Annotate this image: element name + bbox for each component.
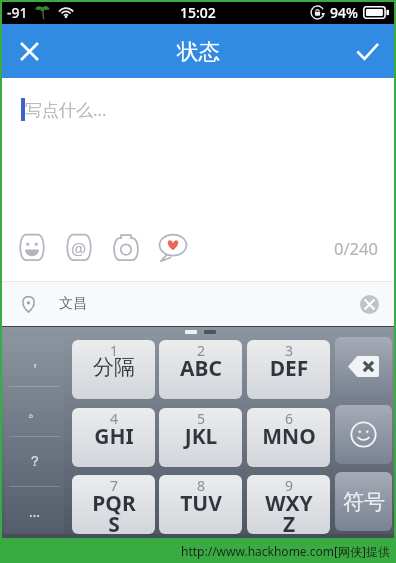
staticText: 6 xyxy=(285,409,294,428)
staticText: ？ xyxy=(28,453,42,471)
staticText: -91 xyxy=(7,3,28,22)
button[interactable]: 。 xyxy=(5,387,64,437)
staticText: JKL xyxy=(166,422,236,451)
button[interactable]: 3 xyxy=(247,340,330,399)
staticText: 写点什么... xyxy=(25,98,107,121)
button[interactable]: 文昌 xyxy=(0,282,396,326)
button[interactable]: 6 xyxy=(247,408,330,467)
button[interactable]: 4 xyxy=(72,408,155,467)
staticText: 3 xyxy=(285,341,294,360)
staticText: 8 xyxy=(197,476,206,495)
staticText: 。 xyxy=(28,403,42,421)
staticText: DEF xyxy=(254,354,324,383)
staticText: 15:02 xyxy=(180,3,216,22)
button[interactable]: ， xyxy=(5,337,64,387)
staticText: 1 xyxy=(110,341,119,360)
staticText: http://www.hackhome.com[网侠]提供 xyxy=(181,543,390,559)
staticText: PQRS xyxy=(89,489,139,533)
staticText: WXYZ xyxy=(264,489,314,533)
staticText: ， xyxy=(28,353,42,371)
staticText: 0/240 xyxy=(334,237,378,259)
button[interactable]: Symbols xyxy=(335,472,392,531)
button[interactable]: 5 xyxy=(159,408,242,467)
staticText: TUV xyxy=(166,489,236,518)
staticText: GHI xyxy=(79,422,149,451)
staticText: … xyxy=(29,502,41,521)
button[interactable]: Backspace xyxy=(335,337,392,396)
button[interactable]: Done xyxy=(338,24,396,78)
staticText: 5 xyxy=(197,409,206,428)
button[interactable]: 8 xyxy=(159,475,242,534)
button[interactable]: Clear location xyxy=(360,295,379,314)
staticText: 分隔 xyxy=(79,354,149,380)
staticText: 状态 xyxy=(177,38,220,65)
staticText: 4 xyxy=(110,409,119,428)
staticText: 7 xyxy=(110,476,119,495)
staticText: 9 xyxy=(285,476,294,495)
button[interactable]: Camera xyxy=(110,232,142,264)
staticText: @ xyxy=(71,237,87,260)
button[interactable]: Close xyxy=(0,24,58,78)
button[interactable]: 7 xyxy=(72,475,155,534)
button[interactable]: 9 xyxy=(247,475,330,534)
button[interactable]: Mention xyxy=(63,232,95,264)
button[interactable]: Emoji xyxy=(335,405,392,464)
button[interactable]: Sticker xyxy=(157,232,189,264)
button[interactable]: Emoji xyxy=(16,232,48,264)
staticText: 文昌 xyxy=(59,295,87,313)
button[interactable]: … xyxy=(5,487,64,535)
staticText: 94% xyxy=(330,3,358,22)
staticText: 2 xyxy=(197,341,206,360)
button[interactable]: 1 xyxy=(72,340,155,399)
button[interactable]: ？ xyxy=(5,437,64,487)
staticText: MNO xyxy=(254,422,324,451)
staticText: 符号 xyxy=(343,489,385,515)
button[interactable]: 2 xyxy=(159,340,242,399)
staticText: ABC xyxy=(166,354,236,383)
